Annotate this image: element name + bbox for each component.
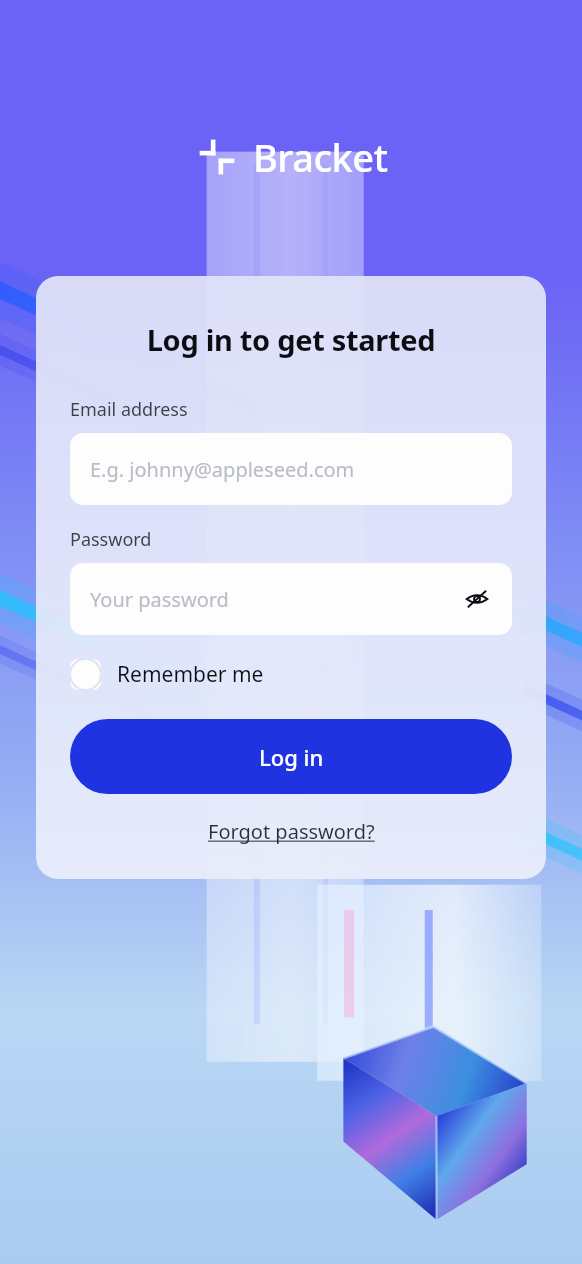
button[interactable]: Remember me	[70, 659, 264, 690]
staticText: Bracket	[253, 131, 388, 183]
staticText: Log in to get started	[70, 320, 512, 359]
staticText: Password	[70, 527, 152, 552]
staticText: Remember me	[117, 660, 264, 689]
button[interactable]: Forgot password?	[204, 816, 379, 847]
button[interactable]: Your password	[70, 563, 512, 635]
staticText: Email address	[70, 397, 188, 422]
button[interactable]: E.g. johnny@appleseed.com	[70, 433, 512, 505]
staticText: E.g. johnny@appleseed.com	[90, 456, 492, 483]
staticText: Log in	[259, 742, 324, 772]
staticText: Forgot password?	[208, 818, 375, 845]
button[interactable]: Log in	[70, 719, 512, 794]
staticText: Your password	[90, 586, 462, 613]
button[interactable]: Show password	[462, 584, 492, 614]
other: Bracket logo	[195, 135, 239, 179]
